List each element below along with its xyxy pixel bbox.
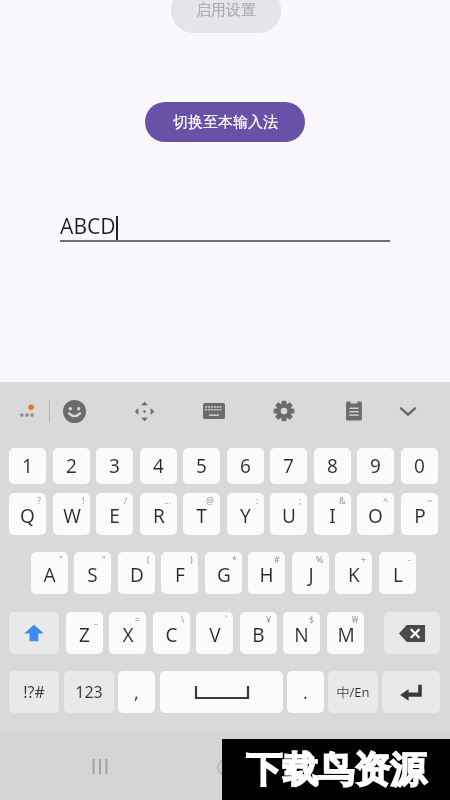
staticText: "	[102, 553, 106, 565]
button[interactable]: ;	[270, 493, 307, 535]
staticText: ¥	[266, 613, 272, 625]
staticText: 1	[22, 453, 33, 479]
button[interactable]: 4	[140, 448, 177, 484]
staticText: &	[339, 494, 346, 506]
staticText: 下载鸟资源	[246, 747, 426, 792]
staticText: *	[232, 553, 237, 565]
button[interactable]: "	[74, 552, 111, 594]
button[interactable]: 123	[64, 671, 114, 713]
button[interactable]: 2	[53, 448, 90, 484]
button[interactable]: ^	[357, 493, 394, 535]
staticText: 4	[153, 453, 164, 479]
staticText: `	[225, 613, 228, 625]
button[interactable]: Recents	[78, 733, 122, 800]
staticText: 启用设置	[196, 1, 256, 20]
button[interactable]: 1	[9, 448, 46, 484]
staticText: 123	[75, 681, 103, 703]
button[interactable]: 6	[227, 448, 264, 484]
staticText: W	[63, 503, 81, 529]
button[interactable]: `	[196, 612, 233, 654]
button[interactable]: Home	[203, 745, 247, 789]
button[interactable]: 5	[183, 448, 220, 484]
button[interactable]: 中/En	[328, 671, 378, 713]
button[interactable]: Move cursor	[123, 390, 165, 432]
staticText: O	[368, 503, 383, 529]
staticText: V	[209, 622, 221, 648]
button[interactable]: !	[53, 493, 90, 535]
staticText: Z	[79, 622, 90, 648]
button[interactable]: More	[6, 394, 50, 430]
staticText: ?	[37, 494, 41, 506]
staticText: N	[294, 622, 309, 648]
staticText: K	[348, 562, 360, 588]
button[interactable]: 9	[357, 448, 394, 484]
button[interactable]: @	[183, 493, 220, 535]
button[interactable]: ?	[9, 493, 46, 535]
button[interactable]: Backspace	[384, 612, 440, 654]
staticText: C	[165, 622, 178, 648]
staticText: !?#	[23, 681, 45, 703]
button[interactable]: =	[109, 612, 146, 654]
staticText: _	[94, 613, 98, 625]
staticText: $	[309, 613, 315, 625]
button[interactable]: ¥	[240, 612, 277, 654]
button[interactable]: ,	[118, 671, 155, 713]
button[interactable]: Settings	[263, 390, 305, 432]
staticText: \	[181, 613, 185, 625]
button[interactable]: %	[292, 552, 329, 594]
staticText: Q	[20, 503, 35, 529]
staticText: 5	[196, 453, 207, 479]
button[interactable]: Keyboard layout	[193, 390, 235, 432]
staticText: 7	[283, 453, 294, 479]
button[interactable]: 8	[314, 448, 351, 484]
button[interactable]: &	[314, 493, 351, 535]
staticText: ,	[134, 680, 139, 705]
button[interactable]: Hide keyboard	[387, 390, 429, 432]
button[interactable]: +	[335, 552, 372, 594]
staticText: P	[414, 503, 426, 529]
staticText: U	[282, 503, 296, 529]
button[interactable]: 3	[96, 448, 133, 484]
staticText: I	[329, 503, 336, 529]
button[interactable]: Shift	[9, 612, 59, 654]
staticText: H	[259, 562, 274, 588]
staticText: G	[217, 562, 231, 588]
button[interactable]: Clipboard	[333, 390, 375, 432]
staticText: 0	[414, 453, 425, 479]
button[interactable]: "	[31, 552, 68, 594]
button[interactable]: Space	[160, 671, 283, 713]
staticText: E	[109, 503, 120, 529]
button[interactable]: (	[118, 552, 155, 594]
button[interactable]: :	[227, 493, 264, 535]
button[interactable]: !?#	[9, 671, 59, 713]
button[interactable]: ₩	[327, 612, 364, 654]
staticText: 9	[370, 453, 381, 479]
button[interactable]: 7	[270, 448, 307, 484]
staticText: "	[59, 553, 63, 565]
button[interactable]: _	[66, 612, 103, 654]
button[interactable]: …	[140, 493, 177, 535]
button[interactable]: \	[153, 612, 190, 654]
staticText: B	[252, 622, 265, 648]
button[interactable]: #	[248, 552, 285, 594]
button[interactable]: /	[96, 493, 133, 535]
staticText: A	[43, 562, 56, 588]
button[interactable]: 启用设置	[171, 0, 281, 33]
button[interactable]: *	[205, 552, 242, 594]
button[interactable]: 0	[401, 448, 438, 484]
staticText: +	[361, 553, 367, 565]
staticText: M	[337, 622, 355, 648]
button[interactable]: ~	[401, 493, 438, 535]
staticText: %	[316, 553, 324, 565]
button[interactable]: .	[287, 671, 324, 713]
button[interactable]: Enter	[382, 671, 440, 713]
staticText: ;	[299, 494, 302, 506]
staticText: D	[130, 562, 144, 588]
button[interactable]: Emoji	[53, 390, 95, 432]
button[interactable]: 切换至本输入法	[145, 102, 305, 142]
button[interactable]: -	[379, 552, 416, 594]
button[interactable]: $	[283, 612, 320, 654]
staticText: ₩	[352, 613, 359, 625]
staticText: S	[87, 562, 98, 588]
button[interactable]: )	[161, 552, 198, 594]
